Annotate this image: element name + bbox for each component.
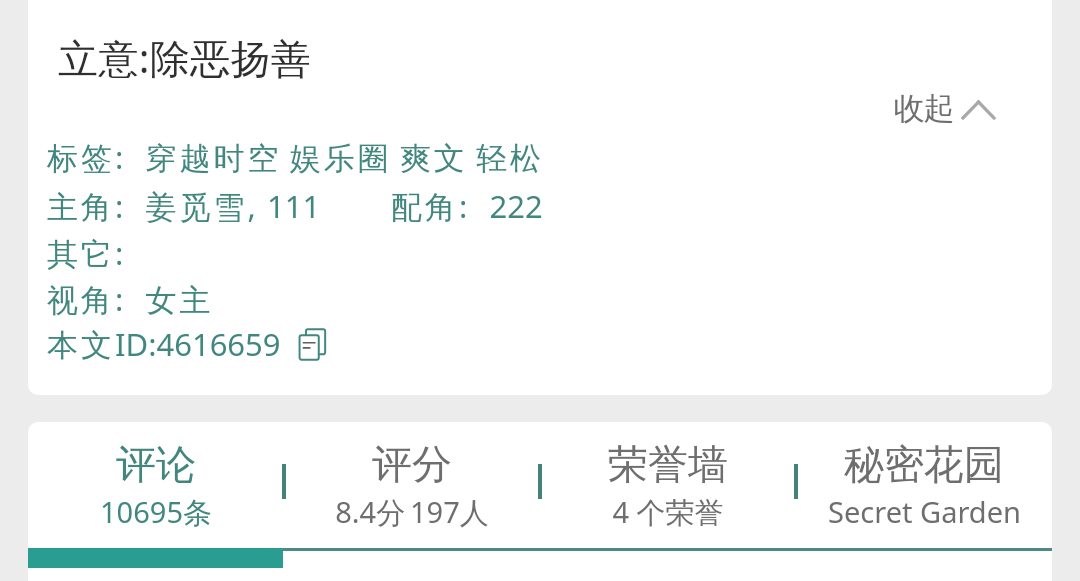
staticText: 主角: 姜觅雪, 111 bbox=[47, 185, 321, 227]
staticText: 秘密花园 bbox=[844, 439, 1004, 489]
staticText: 荣誉墙 bbox=[608, 439, 728, 489]
staticText: 本文ID:4616659 bbox=[47, 323, 281, 365]
staticText: 10695条 bbox=[100, 492, 212, 532]
staticText: 4 个荣誉 bbox=[612, 492, 724, 532]
staticText: 其它: bbox=[47, 232, 127, 274]
button[interactable]: 复制本文ID bbox=[297, 328, 329, 360]
staticText: 评分 bbox=[372, 439, 452, 489]
staticText: 配角: 222 bbox=[391, 185, 543, 227]
button[interactable]: 评分 bbox=[284, 422, 540, 548]
staticText: 视角: 女主 bbox=[47, 278, 214, 320]
staticText: 立意:除恶扬善 bbox=[58, 30, 312, 85]
button[interactable]: 评论 bbox=[28, 422, 284, 548]
staticText: 收起 bbox=[894, 89, 954, 128]
button[interactable]: 荣誉墙 bbox=[540, 422, 796, 548]
staticText: 标签: 穿越时空 娱乐圈 爽文 轻松 bbox=[47, 136, 544, 178]
staticText: 评论 bbox=[116, 439, 196, 489]
button[interactable]: 收起 bbox=[874, 77, 1014, 140]
staticText: Secret Garden bbox=[828, 492, 1021, 531]
button[interactable]: 秘密花园 bbox=[796, 422, 1052, 548]
staticText: 8.4分 197人 bbox=[335, 492, 489, 532]
